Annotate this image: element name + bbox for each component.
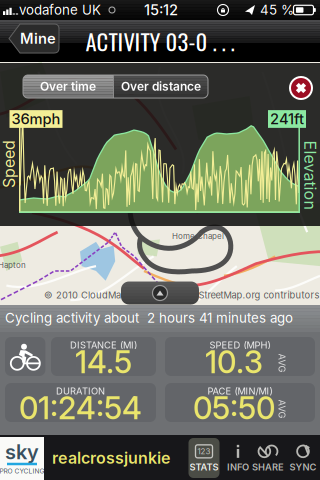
staticText: DURATION [56,385,105,397]
staticText: realcrossjunkie [52,448,170,468]
staticText: SYNC [289,461,316,473]
staticText: ACTIVITY 03-0 . . . [85,24,234,58]
staticText: 241ft [270,110,304,128]
staticText: 05:50 [193,389,275,426]
button[interactable]: SHARE [251,438,285,478]
button[interactable]: Mine [5,22,63,55]
button[interactable]: 123 [188,438,219,478]
button[interactable]: Expand map [121,281,199,304]
staticText: Elevation [275,165,320,185]
button[interactable]: Over distance [114,75,208,98]
staticText: AVG [272,357,291,369]
staticText: Cycling activity about 2 hours 41 minute… [5,310,293,326]
staticText: SPEED (MPH) [209,339,270,351]
staticText: STATS [189,461,218,473]
staticText: Mine [20,30,56,47]
staticText: OpenStreetMap.org contributors [174,289,319,301]
staticText: Over distance [121,79,201,94]
staticText: vodafone UK [19,2,101,18]
staticText: © 2010 CloudMade [44,289,132,301]
staticText: 36mph [11,110,60,128]
staticText: 45 % [260,2,294,18]
staticText: AVG [272,403,291,415]
button[interactable]: Close [288,75,314,101]
staticText: PACE (MIN/MI) [207,385,272,397]
staticText: 123 [197,446,210,456]
staticText: Home Chapel [172,231,224,241]
staticText: INFO [227,461,249,473]
staticText: Speed [0,154,33,174]
staticText: 10.3 [205,343,263,380]
staticText: 01:24:54 [19,389,142,426]
staticText: SHARE [252,461,284,473]
staticText: DISTANCE (MI) [70,339,137,351]
staticText: PRO CYCLING [0,467,44,475]
button[interactable]: SYNC [288,438,318,478]
staticText: Hapton [0,260,26,270]
staticText: 14.5 [75,343,132,380]
staticText: Over time [40,79,96,94]
staticText: sky [5,440,39,464]
button[interactable]: INFO [223,438,253,478]
staticText: 15:12 [144,1,178,19]
button[interactable]: Over time [23,75,113,98]
